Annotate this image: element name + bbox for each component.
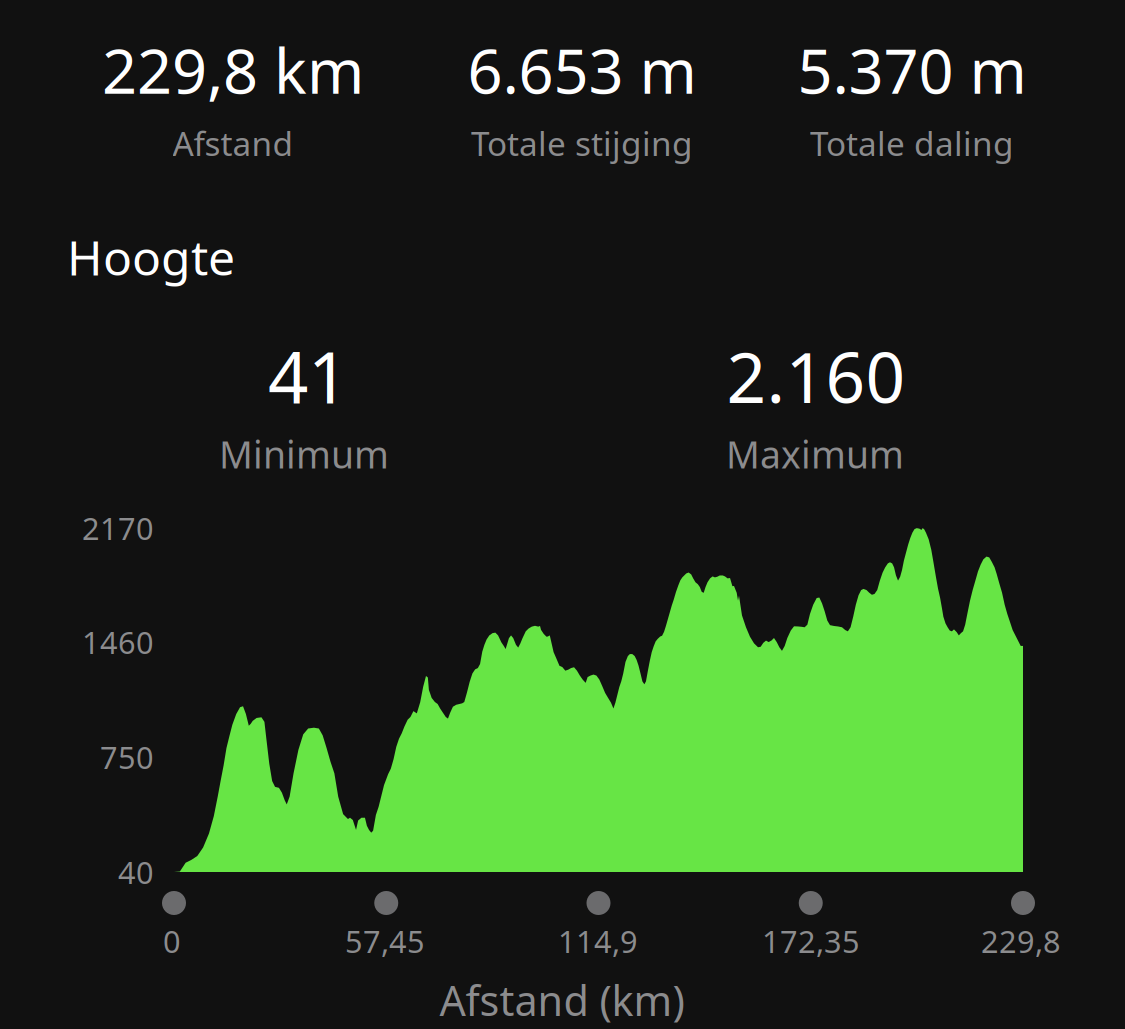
staticText: 1460 <box>82 622 154 662</box>
staticText: Totale daling <box>810 121 1014 165</box>
staticText: 41 <box>268 329 348 423</box>
staticText: 114,9 <box>558 921 638 961</box>
staticText: 6.653 m <box>467 29 696 111</box>
staticText: 40 <box>118 852 154 892</box>
staticText: 5.370 m <box>797 29 1026 111</box>
staticText: Minimum <box>219 429 389 479</box>
button[interactable]: Hoogteprofiel <box>0 0 1125 1029</box>
staticText: 229,8 km <box>102 29 364 111</box>
staticText: 2170 <box>82 508 154 548</box>
staticText: 229,8 <box>981 921 1061 961</box>
staticText: Hoogte <box>67 225 235 289</box>
staticText: 2.160 <box>726 330 905 422</box>
staticText: 172,35 <box>762 921 860 961</box>
staticText: 57,45 <box>345 921 425 961</box>
staticText: 750 <box>100 737 154 777</box>
staticText: 0 <box>163 921 181 961</box>
staticText: Maximum <box>726 429 904 479</box>
staticText: Afstand <box>172 121 293 165</box>
staticText: Afstand (km) <box>439 973 684 1027</box>
staticText: Totale stijging <box>471 121 693 165</box>
